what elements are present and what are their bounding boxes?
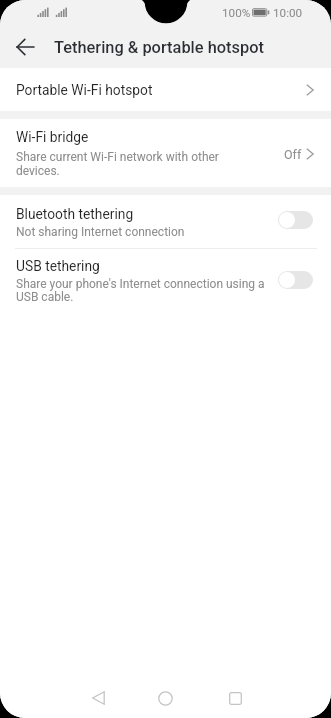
button[interactable]: Recent apps [211,676,259,718]
staticText: Not sharing Internet connection [16,225,266,239]
button[interactable]: Wi-Fi bridge [0,119,331,187]
button[interactable]: Toggle [278,271,313,289]
staticText: Off [284,147,302,162]
staticText: USB tethering [16,258,100,274]
button[interactable]: Bluetooth tethering [0,195,331,248]
button[interactable]: Back [0,26,54,68]
staticText: Tethering & portable hotspot [54,38,264,57]
staticText: Portable Wi-Fi hotspot [16,82,153,98]
button[interactable]: USB tethering [0,249,331,315]
staticText: Share current Wi-Fi network with other d… [16,150,231,177]
staticText: Share your phone's Internet connection u… [16,277,266,304]
staticText: 10:00 [273,6,303,20]
button[interactable]: Toggle [278,211,313,229]
button[interactable]: Portable Wi-Fi hotspot [0,68,331,111]
staticText: 100% [222,6,251,20]
button[interactable]: Home [141,676,189,718]
button[interactable]: Back [74,676,122,718]
staticText: Wi-Fi bridge [16,129,89,145]
staticText: Bluetooth tethering [16,206,134,222]
